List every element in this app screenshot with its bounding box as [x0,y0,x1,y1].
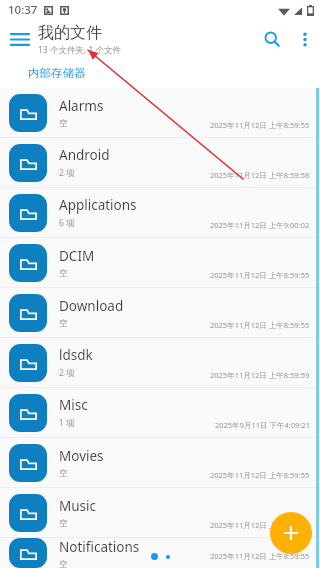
staticText: 2025年11月12日 上午8:59:55 [210,520,310,530]
staticText: 空 [59,559,68,568]
staticText: 空 [59,468,68,479]
staticText: 2025年11月12日 上午8:59:59 [210,370,310,380]
button[interactable]: Movies [0,438,320,487]
staticText: Android [59,146,110,164]
staticText: Applications [59,196,137,214]
staticText: 空 [59,518,68,529]
staticText: 内部存储器 [28,66,86,80]
staticText: 我的文件 [38,23,102,43]
button[interactable]: 内部存储器 [28,66,86,80]
staticText: 10:37 [8,2,38,18]
staticText: 2 项 [59,367,75,379]
staticText: Misc [59,396,88,414]
button[interactable]: Applications [0,188,320,237]
staticText: 6 项 [59,217,75,229]
staticText: 13 个文件夹, 1 个文件 [38,44,121,56]
staticText: 2025年11月12日 上午8:59:55 [210,270,310,280]
staticText: Movies [59,447,104,465]
staticText: Music [59,497,97,515]
staticText: 1 项 [59,417,75,429]
staticText: 2 项 [59,167,75,179]
staticText: 2025年11月12日 上午8:59:55 [210,320,310,330]
button[interactable]: Android [0,138,320,187]
staticText: 2025年11月12日 上午8:59:55 [210,120,310,130]
staticText: 2025年11月12日 上午8:59:55 [210,551,310,561]
staticText: 2025年11月12日 上午9:00:02 [210,220,310,230]
staticText: DCIM [59,247,95,265]
button[interactable]: Open navigation drawer [0,20,40,58]
staticText: ldsdk [59,346,93,364]
staticText: Download [59,297,124,315]
button[interactable]: Add [270,512,312,554]
staticText: 空 [59,268,68,279]
button[interactable]: More options [290,24,320,54]
button[interactable]: Alarms [0,88,320,137]
button[interactable]: Search [254,21,290,57]
staticText: 空 [59,118,68,129]
staticText: Alarms [59,97,104,115]
button[interactable]: Music [0,488,320,537]
button[interactable]: DCIM [0,238,320,287]
staticText: 空 [59,318,68,329]
button[interactable]: Notifications [0,538,320,568]
button[interactable]: Download [0,288,320,337]
staticText: 2025年11月12日 上午8:59:58 [210,170,310,180]
staticText: 2025年9月11日 下午4:09:21 [215,420,310,430]
staticText: Notifications [59,538,140,556]
staticText: 2025年11月12日 上午8:59:55 [210,470,310,480]
button[interactable]: Misc [0,388,320,437]
button[interactable]: ldsdk [0,338,320,387]
